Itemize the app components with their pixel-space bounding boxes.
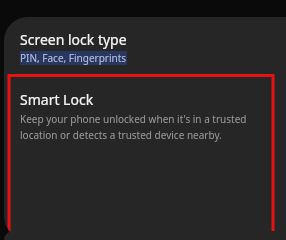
- button[interactable]: Screen lock type: [4, 17, 286, 74]
- staticText: location or detects a trusted device nea…: [20, 128, 222, 142]
- staticText: PIN, Face, Fingerprints: [20, 51, 127, 65]
- staticText: Screen lock type: [20, 30, 127, 49]
- button[interactable]: Smart Lock: [4, 74, 286, 155]
- staticText: Keep your phone unlocked when it's in a …: [20, 112, 247, 126]
- staticText: Smart Lock: [20, 90, 94, 109]
